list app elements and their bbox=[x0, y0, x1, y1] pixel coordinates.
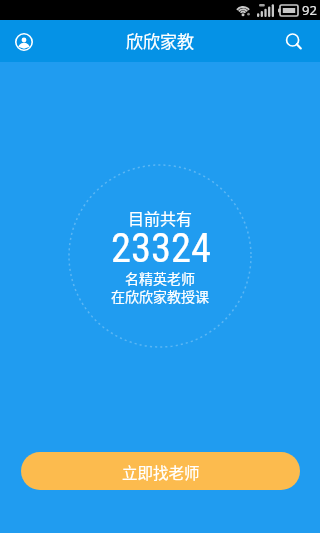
button[interactable]: Search bbox=[275, 23, 313, 61]
staticText: 92 bbox=[302, 1, 317, 19]
button[interactable]: 立即找老师 bbox=[21, 452, 300, 490]
staticText: 名精英老师 在欣欣家教授课 bbox=[111, 268, 209, 306]
button[interactable]: Profile bbox=[5, 23, 42, 60]
staticText: 23324 bbox=[111, 224, 211, 271]
staticText: 目前共有 bbox=[128, 206, 193, 229]
staticText: 立即找老师 bbox=[122, 461, 200, 483]
staticText: 欣欣家教 bbox=[126, 28, 194, 53]
